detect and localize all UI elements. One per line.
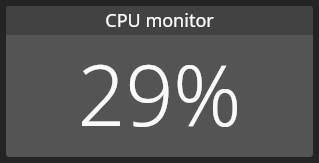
staticText: 29% bbox=[77, 36, 242, 150]
button[interactable]: CPU monitor bbox=[6, 6, 313, 157]
staticText: CPU monitor bbox=[105, 8, 214, 33]
